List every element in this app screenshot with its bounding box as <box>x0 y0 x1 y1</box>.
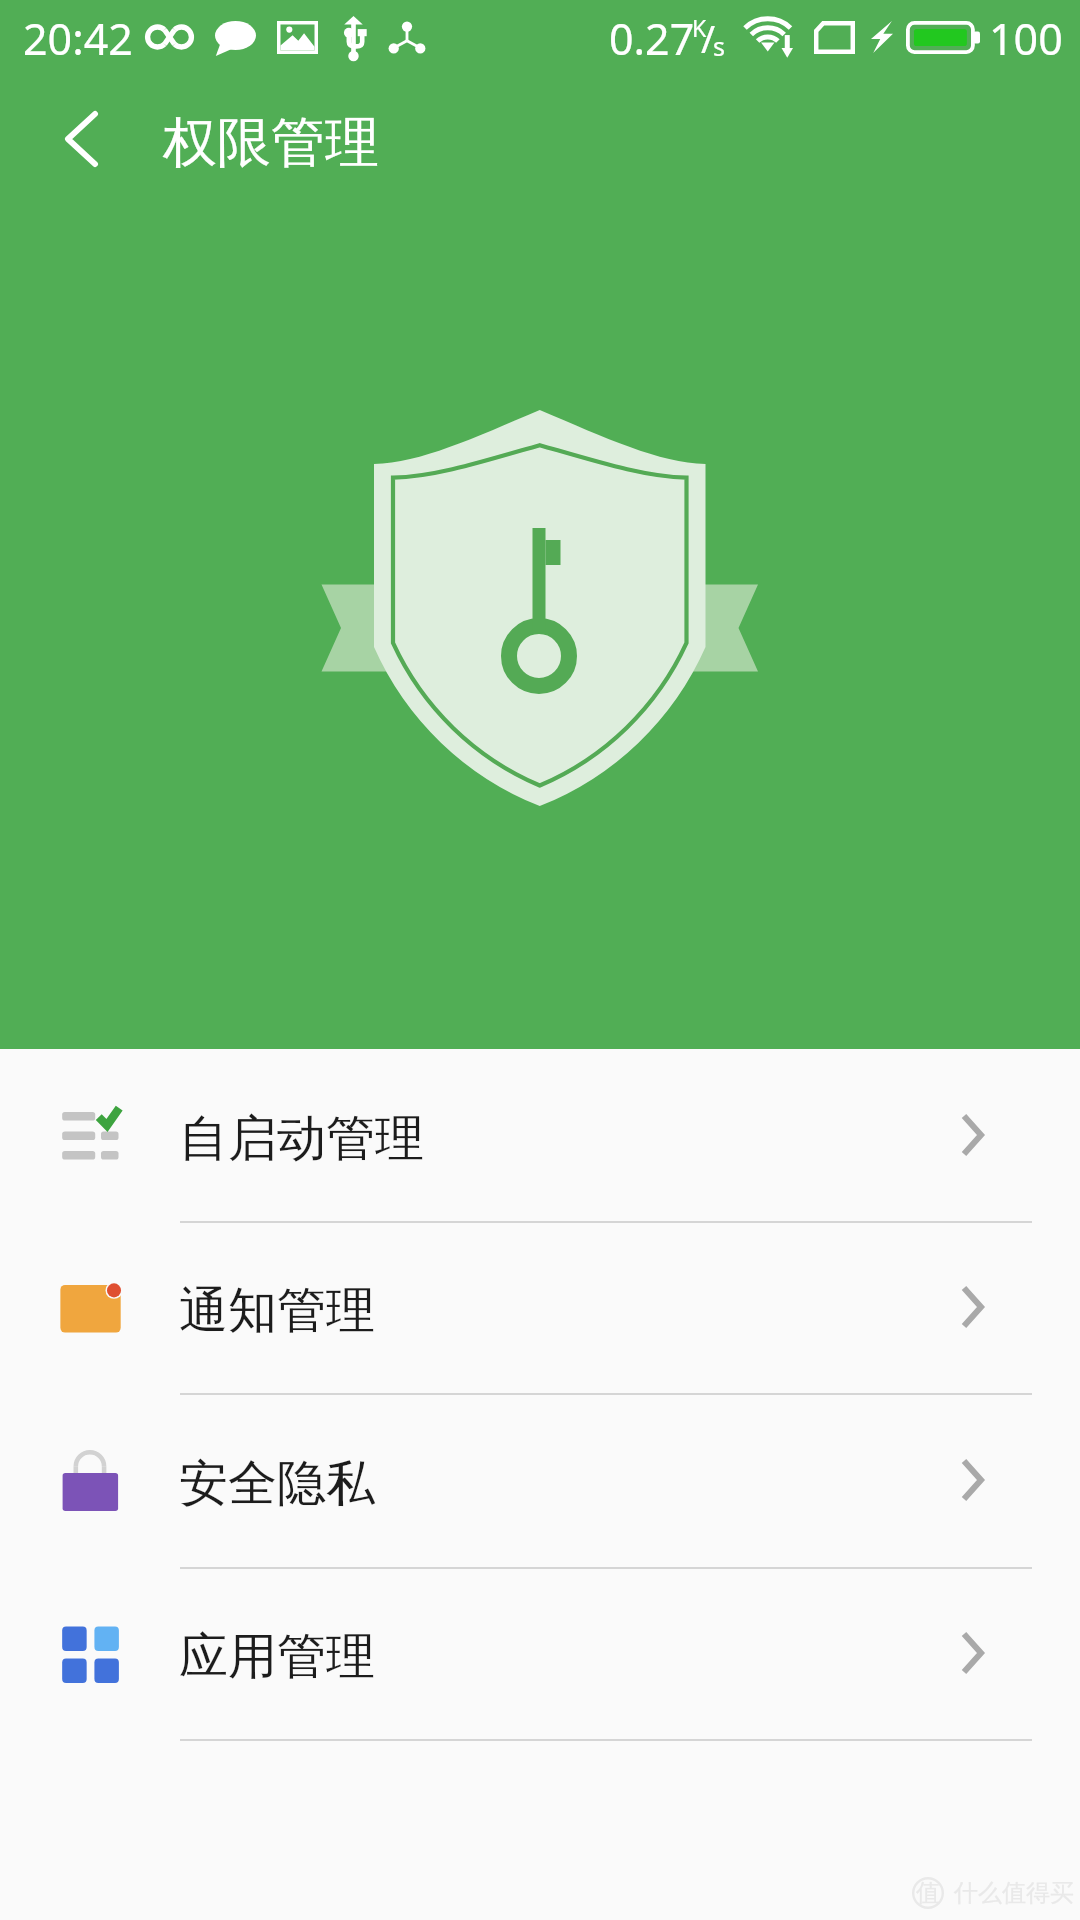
staticText: 自启动管理 <box>179 1108 424 1170</box>
staticText: 安全隐私 <box>179 1453 375 1515</box>
button[interactable]: 通知管理 <box>0 1222 1080 1395</box>
button[interactable]: 应用管理 <box>0 1568 1080 1741</box>
staticText: 什么值得买 <box>954 1878 1074 1908</box>
staticText: 应用管理 <box>179 1626 375 1688</box>
staticText: 值 <box>916 1878 940 1908</box>
staticText: 100 <box>989 9 1063 68</box>
staticText: / <box>701 12 716 64</box>
staticText: 权限管理 <box>163 109 379 177</box>
staticText: K <box>692 12 707 43</box>
staticText: 0.27 <box>609 9 695 68</box>
staticText: 20:42 <box>23 9 133 68</box>
staticText: 通知管理 <box>179 1280 375 1342</box>
button[interactable]: 自启动管理 <box>0 1050 1080 1223</box>
button[interactable]: 安全隐私 <box>0 1394 1080 1569</box>
button[interactable]: Back <box>21 84 141 194</box>
staticText: s <box>713 29 725 63</box>
